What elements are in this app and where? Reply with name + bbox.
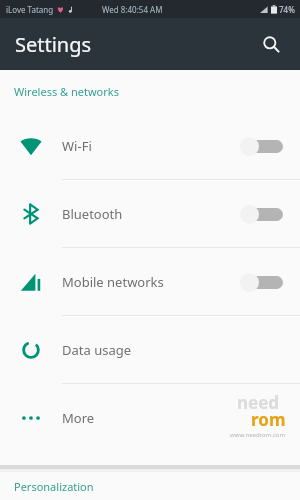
- button[interactable]: Mobile networks toggle: [240, 268, 284, 296]
- staticText: Mobile networks: [62, 273, 240, 291]
- button[interactable]: Wi-Fi: [0, 112, 300, 179]
- staticText: rom: [251, 408, 286, 431]
- staticText: Wi-Fi: [62, 137, 240, 155]
- button[interactable]: Mobile networks: [0, 248, 300, 315]
- button[interactable]: Data usage: [0, 316, 300, 383]
- staticText: Wed 8:40:54 AM: [102, 4, 163, 15]
- staticText: Data usage: [62, 341, 240, 359]
- staticText: Personalization: [14, 479, 94, 494]
- staticText: Bluetooth: [62, 205, 240, 223]
- staticText: iLove Tatang: [6, 4, 54, 15]
- button[interactable]: Search: [254, 27, 288, 61]
- staticText: Settings: [15, 31, 92, 58]
- staticText: More: [62, 409, 240, 427]
- button[interactable]: Wi-Fi toggle: [240, 132, 284, 160]
- staticText: 74%: [279, 4, 295, 15]
- staticText: need: [237, 391, 280, 414]
- button[interactable]: Bluetooth: [0, 180, 300, 247]
- button[interactable]: Bluetooth toggle: [240, 200, 284, 228]
- staticText: Wireless & networks: [14, 84, 119, 99]
- button[interactable]: More: [0, 384, 300, 451]
- staticText: www.needrom.com: [230, 431, 286, 439]
